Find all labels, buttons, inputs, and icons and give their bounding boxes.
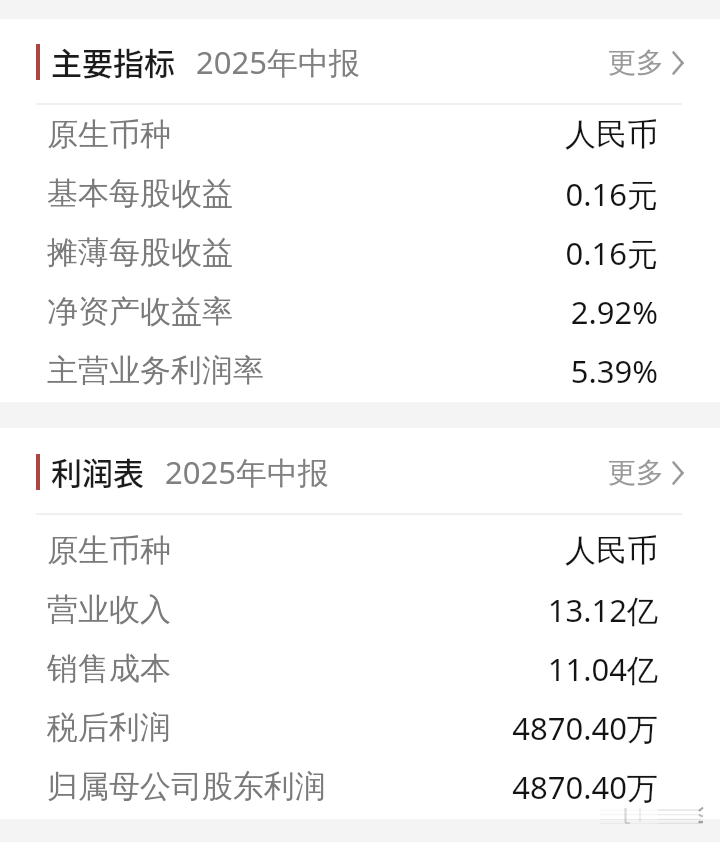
staticText: 人民币 [565,531,658,570]
staticText: 0.16元 [565,232,658,274]
staticText: 基本每股收益 [47,174,233,213]
staticText: 5.39% [570,350,658,392]
staticText: 营业收入 [47,590,171,629]
button[interactable]: 基本每股收益 [0,164,720,223]
staticText: 税后利润 [47,708,171,747]
staticText: 4870.40万 [512,766,658,808]
staticText: 人民币 [565,115,658,154]
button[interactable]: 主营业务利润率 [0,341,720,400]
staticText: 销售成本 [47,649,171,688]
staticText: 原生币种 [47,115,171,154]
other: More [672,461,684,485]
staticText: 2025年中报 [196,41,360,83]
button[interactable]: 税后利润 [0,698,720,757]
staticText: 4870.40万 [512,707,658,749]
button[interactable]: 净资产收益率 [0,282,720,341]
button[interactable]: 销售成本 [0,639,720,698]
staticText: 11.04亿 [547,648,658,690]
staticText: 13.12亿 [547,589,658,631]
staticText: 利润表 [51,449,144,494]
button[interactable]: 更多 [608,45,684,80]
staticText: 原生币种 [47,531,171,570]
staticText: 0.16元 [565,173,658,215]
other: More [672,51,684,75]
button[interactable]: 归属母公司股东利润 [0,757,720,816]
button[interactable]: 原生币种 [0,521,720,580]
button[interactable]: 利润表 [0,428,720,513]
staticText: 主营业务利润率 [47,351,264,390]
staticText: 更多 [608,45,664,80]
staticText: 净资产收益率 [47,292,233,331]
staticText: 2025年中报 [165,451,329,493]
button[interactable]: 营业收入 [0,580,720,639]
button[interactable]: 主要指标 [0,19,720,103]
staticText: 归属母公司股东利润 [47,767,326,806]
staticText: 更多 [608,455,664,490]
staticText: 摊薄每股收益 [47,233,233,272]
button[interactable]: 更多 [608,455,684,490]
staticText: 2.92% [570,291,658,333]
button[interactable]: 原生币种 [0,105,720,164]
staticText: 主要指标 [51,39,175,84]
button[interactable]: 摊薄每股收益 [0,223,720,282]
